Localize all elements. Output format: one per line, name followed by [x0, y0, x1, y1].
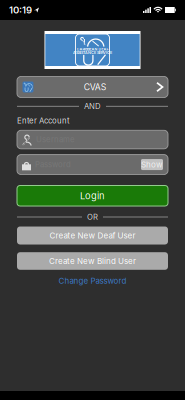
staticText: OR [87, 212, 98, 222]
button[interactable]: Change Password [58, 276, 126, 285]
staticText: Change Password [58, 276, 126, 286]
staticText: 10:19 [9, 4, 32, 16]
staticText: Create New Blind User [49, 256, 136, 266]
staticText: CVAS [84, 82, 107, 92]
button[interactable]: CVAS [17, 76, 168, 97]
staticText: AND [84, 102, 101, 111]
staticText: Create New Deaf User [49, 231, 135, 240]
staticText: CARIBBEAN DEAF [76, 47, 108, 51]
button[interactable]: Show [141, 159, 163, 170]
staticText: Login [80, 190, 105, 201]
staticText: Show [141, 160, 163, 169]
button[interactable]: Login [17, 185, 168, 206]
button[interactable]: Create New Deaf User [17, 226, 168, 244]
staticText: Password [35, 160, 71, 169]
button[interactable]: Create New Blind User [17, 252, 168, 270]
staticText: Enter Account [17, 116, 70, 125]
staticText: ASSISTANCE SERVICE [73, 50, 112, 55]
staticText: Username [36, 135, 75, 144]
